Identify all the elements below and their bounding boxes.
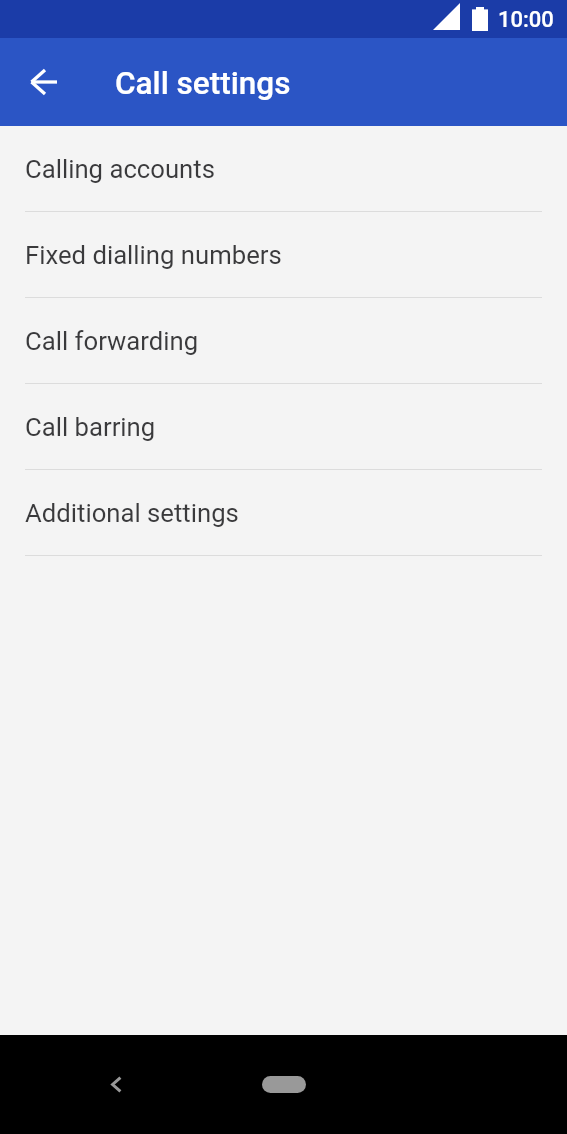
staticText: Calling accounts bbox=[25, 154, 215, 184]
button[interactable]: Call forwarding bbox=[0, 298, 567, 384]
button[interactable]: Home bbox=[262, 1076, 306, 1093]
button[interactable]: Navigate up bbox=[15, 54, 71, 110]
button[interactable]: Call barring bbox=[0, 384, 567, 470]
staticText: 10:00 bbox=[498, 7, 554, 33]
button[interactable]: Back bbox=[92, 1060, 140, 1108]
staticText: Additional settings bbox=[25, 498, 239, 528]
button[interactable]: Fixed dialling numbers bbox=[0, 212, 567, 298]
staticText: Call barring bbox=[25, 412, 156, 442]
staticText: Call forwarding bbox=[25, 326, 199, 356]
button[interactable]: Additional settings bbox=[0, 470, 567, 556]
button[interactable]: Calling accounts bbox=[0, 126, 567, 212]
staticText: Call settings bbox=[115, 65, 291, 102]
staticText: Fixed dialling numbers bbox=[25, 240, 282, 270]
